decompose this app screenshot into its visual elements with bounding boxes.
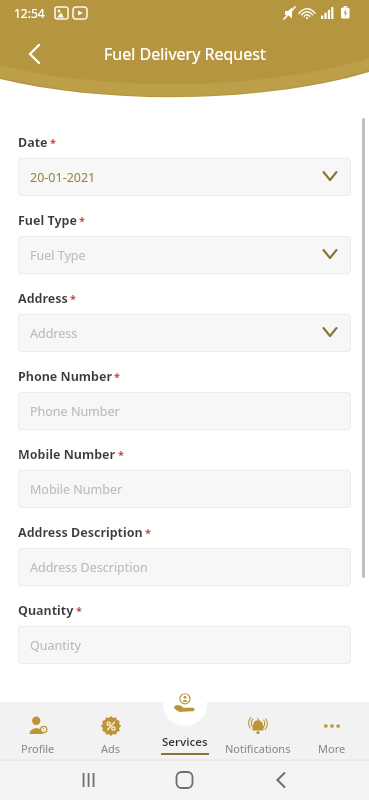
staticText: Notifications <box>225 741 291 756</box>
staticText: Ads <box>101 741 121 756</box>
button[interactable]: 20-01-2021 <box>18 158 351 196</box>
staticText: More <box>318 741 346 756</box>
button[interactable]: Quantity <box>18 626 351 664</box>
staticText: * <box>145 525 151 540</box>
staticText: Address Description <box>18 524 143 541</box>
button[interactable]: More <box>296 702 368 760</box>
staticText: Address <box>30 325 78 342</box>
staticText: Quantity <box>18 602 74 619</box>
staticText: Fuel Delivery Request <box>104 43 266 65</box>
button[interactable]: Profile <box>2 702 74 760</box>
button[interactable]: Services <box>163 682 207 726</box>
staticText: Services <box>162 734 208 750</box>
staticText: Quantity <box>30 637 81 654</box>
button[interactable]: Notifications <box>222 702 294 760</box>
button[interactable]: Fuel Type <box>18 236 351 274</box>
button[interactable]: Address <box>18 314 351 352</box>
staticText: Fuel Type <box>18 212 77 229</box>
staticText: * <box>114 369 120 384</box>
staticText: * <box>79 213 85 228</box>
staticText: Date <box>18 134 48 151</box>
button[interactable]: Address Description <box>18 548 351 586</box>
staticText: Phone Number <box>30 403 120 420</box>
staticText: Phone Number <box>18 368 112 385</box>
button[interactable]: Ads <box>75 702 147 760</box>
staticText: Address <box>18 290 68 307</box>
staticText: Mobile Number <box>18 446 116 463</box>
staticText: * <box>70 291 76 306</box>
staticText: Fuel Type <box>30 247 86 264</box>
button[interactable]: Back <box>10 32 54 76</box>
button[interactable]: Services <box>149 702 221 760</box>
staticText: * <box>118 447 124 462</box>
staticText: * <box>76 603 82 618</box>
staticText: 12:54 <box>14 5 45 21</box>
staticText: Address Description <box>30 559 148 576</box>
staticText: 20-01-2021 <box>30 169 96 186</box>
button[interactable]: Phone Number <box>18 392 351 430</box>
staticText: * <box>50 135 56 150</box>
button[interactable]: Mobile Number <box>18 470 351 508</box>
staticText: Profile <box>21 741 55 756</box>
staticText: Mobile Number <box>30 481 123 498</box>
